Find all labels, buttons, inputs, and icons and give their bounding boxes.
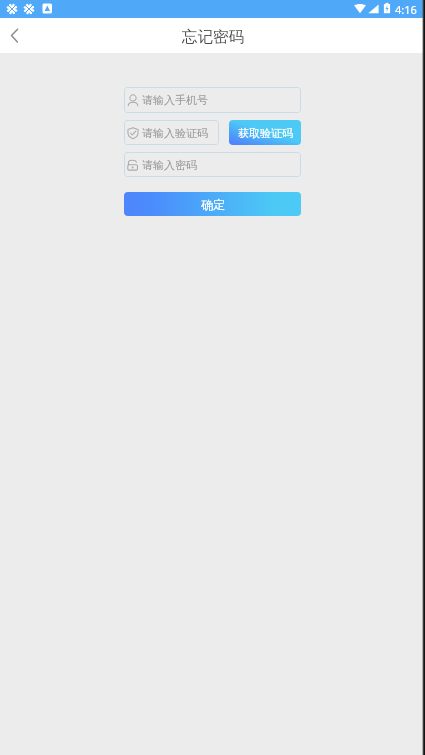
staticText: 请输入验证码 (142, 126, 208, 140)
staticText: 请输入手机号 (142, 93, 208, 107)
button[interactable]: 请输入手机号 (124, 87, 301, 113)
button[interactable]: Back (0, 18, 32, 53)
staticText: 确定 (201, 197, 225, 212)
button[interactable]: 请输入验证码 (124, 120, 219, 145)
staticText: 请输入密码 (142, 158, 197, 172)
staticText: 4:16 (395, 2, 417, 17)
staticText: 获取验证码 (238, 126, 293, 140)
button[interactable]: 获取验证码 (229, 120, 301, 145)
button[interactable]: 确定 (124, 192, 301, 216)
button[interactable]: 请输入密码 (124, 152, 301, 177)
staticText: 忘记密码 (182, 27, 244, 47)
